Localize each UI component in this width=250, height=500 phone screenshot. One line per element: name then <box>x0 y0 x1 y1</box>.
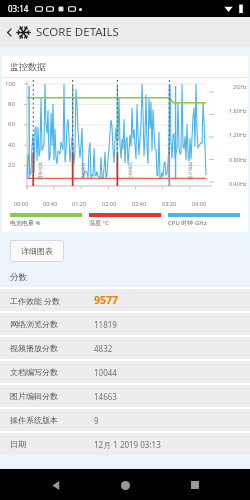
staticText: 03:20 <box>162 200 192 207</box>
staticText: 4832 <box>94 343 113 354</box>
button[interactable]: 工作效能 分数 <box>0 289 250 311</box>
staticText: 20 <box>8 161 15 169</box>
staticText: 9577 <box>94 293 119 307</box>
staticText: 详细图表 <box>21 246 53 256</box>
staticText: 温度 °C <box>89 219 161 227</box>
staticText: 1.20Hz <box>229 131 247 138</box>
button[interactable]: 日期 <box>0 433 250 455</box>
staticText: 视频播放分数 <box>10 343 88 353</box>
staticText: 00:40 <box>43 200 72 207</box>
staticText: 9 <box>94 415 99 426</box>
staticText: 04:00 <box>192 200 222 207</box>
button[interactable]: 操作系统版本 <box>0 409 250 431</box>
staticText: 03:14 <box>8 3 29 14</box>
staticText: 0.40Hz <box>229 180 247 187</box>
staticText: 60 <box>8 120 15 128</box>
staticText: 80 <box>8 100 15 108</box>
button[interactable]: 文档编写分数 <box>0 361 250 383</box>
staticText: 文档编写 <box>128 162 134 180</box>
button[interactable]: 网络浏览分数 <box>0 313 250 335</box>
staticText: 日期 <box>10 439 88 449</box>
staticText: 网络浏览 <box>38 162 44 180</box>
staticText: 文档编写分数 <box>10 367 88 377</box>
staticText: 视频播放 <box>81 162 87 180</box>
staticText: 分数 <box>10 272 27 283</box>
staticText: 工作效能 分数 <box>10 295 88 306</box>
staticText: 00:00 <box>14 200 43 207</box>
button[interactable]: Back <box>42 471 70 499</box>
staticText: 40 <box>8 141 15 149</box>
button[interactable]: Recents <box>181 471 209 499</box>
staticText: 10044 <box>94 367 117 378</box>
staticText: 网络浏览分数 <box>10 319 88 329</box>
button[interactable]: Home <box>111 471 139 499</box>
staticText: 操作系统版本 <box>10 415 88 425</box>
staticText: 14663 <box>94 391 117 402</box>
staticText: 11819 <box>94 319 117 330</box>
staticText: 12月 1 2019 03:13 <box>94 439 161 450</box>
staticText: 0.80Hz <box>229 156 247 163</box>
staticText: 图片编辑 <box>188 162 194 180</box>
staticText: 100 <box>5 80 16 88</box>
staticText: 02:00 <box>102 200 132 207</box>
staticText: SCORE DETAILS <box>36 24 119 40</box>
button[interactable]: Back <box>2 25 16 39</box>
staticText: 监控数据 <box>10 61 46 72</box>
button[interactable]: 视频播放分数 <box>0 337 250 359</box>
staticText: CPU 时钟 GHz <box>168 219 240 227</box>
staticText: 02:40 <box>132 200 162 207</box>
staticText: 电池电量 % <box>10 219 82 227</box>
staticText: 01:20 <box>72 200 102 207</box>
staticText: 1.60Hz <box>229 107 247 114</box>
staticText: 2GHz <box>233 83 247 90</box>
button[interactable]: 图片编辑分数 <box>0 385 250 407</box>
button[interactable]: 详细图表 <box>10 240 64 262</box>
staticText: 图片编辑分数 <box>10 391 88 401</box>
